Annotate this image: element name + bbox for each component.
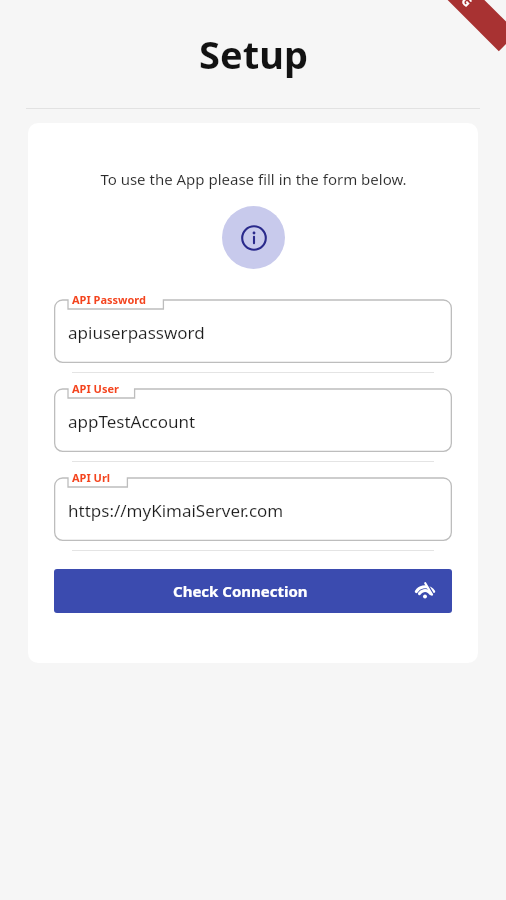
button[interactable]: Check Connection xyxy=(54,569,452,613)
staticText: Setup xyxy=(199,28,308,80)
button[interactable]: API Password xyxy=(54,293,452,363)
staticText: apiuserpassword xyxy=(68,321,205,344)
staticText: DEBUG xyxy=(433,0,477,11)
button[interactable]: Information xyxy=(222,206,285,269)
staticText: API User xyxy=(72,381,119,396)
staticText: API Url xyxy=(72,470,111,485)
staticText: appTestAccount xyxy=(68,410,196,433)
staticText: Check Connection xyxy=(173,581,308,601)
staticText: To use the App please fill in the form b… xyxy=(100,169,407,189)
staticText: https://myKimaiServer.com xyxy=(68,499,284,522)
button[interactable]: API User xyxy=(54,382,452,452)
staticText: API Password xyxy=(72,292,146,307)
button[interactable]: API Url xyxy=(54,471,452,541)
